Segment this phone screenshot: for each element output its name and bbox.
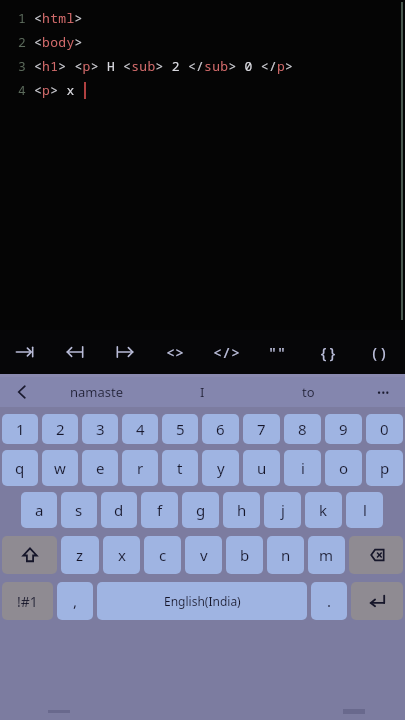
button[interactable]: 3 (82, 414, 118, 444)
staticText: English(India) (164, 593, 241, 609)
button[interactable]: Previous suggestions (0, 377, 44, 407)
button[interactable]: Insert </> (201, 330, 252, 374)
button[interactable]: t (162, 450, 198, 486)
staticText: 4 (136, 419, 145, 439)
staticText: o (339, 458, 349, 478)
staticText: w (54, 458, 66, 478)
staticText: d (114, 500, 124, 520)
button[interactable]: u (243, 450, 280, 486)
button[interactable]: y (202, 450, 239, 486)
staticText: g (196, 500, 206, 520)
staticText: I (200, 383, 205, 401)
staticText: 3 (96, 419, 105, 439)
button[interactable]: j (264, 492, 301, 528)
button[interactable]: I (149, 377, 255, 407)
staticText: , (73, 591, 78, 611)
staticText: q (15, 458, 25, 478)
button[interactable]: Insert "" (252, 330, 303, 374)
staticText: h (237, 500, 247, 520)
button[interactable]: v (185, 536, 222, 574)
button[interactable]: 9 (325, 414, 362, 444)
staticText: f (157, 500, 163, 520)
staticText: <body> (34, 33, 83, 51)
staticText: <> (166, 342, 185, 362)
staticText: 2 (18, 33, 26, 51)
button[interactable]: w (42, 450, 78, 486)
button[interactable]: Insert tab (0, 330, 50, 374)
button[interactable]: English(India) (97, 582, 307, 620)
button[interactable]: !#1 (2, 582, 53, 620)
button[interactable]: Insert {} (303, 330, 354, 374)
staticText: 4 (18, 81, 26, 99)
button[interactable]: o (325, 450, 362, 486)
staticText: y (217, 458, 225, 478)
button[interactable]: More options (361, 377, 405, 407)
button[interactable]: b (226, 536, 263, 574)
button[interactable]: i (284, 450, 321, 486)
button[interactable]: 4 (122, 414, 158, 444)
button[interactable]: Insert () (354, 330, 405, 374)
staticText: <html> (34, 9, 83, 27)
button[interactable]: 5 (162, 414, 198, 444)
staticText: 8 (298, 419, 307, 439)
button[interactable]: m (308, 536, 345, 574)
button[interactable]: k (305, 492, 342, 528)
button[interactable]: 7 (243, 414, 280, 444)
button[interactable]: r (122, 450, 158, 486)
staticText: r (137, 458, 144, 478)
button[interactable]: a (21, 492, 57, 528)
staticText: <h1> <p> H <sub> 2 </sub> 0 </p> (34, 57, 294, 75)
staticText: 3 (18, 57, 26, 75)
staticText: a (35, 500, 44, 520)
button[interactable]: n (267, 536, 304, 574)
staticText: ••• (377, 385, 390, 400)
button[interactable]: h (223, 492, 260, 528)
button[interactable]: 0 (366, 414, 403, 444)
staticText: j (281, 500, 285, 520)
button[interactable]: , (57, 582, 93, 620)
button[interactable]: f (141, 492, 178, 528)
button[interactable]: Key (351, 582, 403, 620)
button[interactable]: Insert <> (150, 330, 201, 374)
button[interactable]: c (144, 536, 181, 574)
button[interactable]: 1 (2, 414, 38, 444)
button[interactable]: namaste (44, 377, 149, 407)
button[interactable]: 2 (42, 414, 78, 444)
button[interactable]: g (182, 492, 219, 528)
staticText: <p> x (34, 81, 83, 99)
staticText: 0 (380, 419, 389, 439)
staticText: z (76, 545, 84, 565)
staticText: i (301, 458, 305, 478)
staticText: . (327, 591, 332, 611)
button[interactable]: p (366, 450, 403, 486)
button[interactable]: Insert larr (50, 330, 100, 374)
button[interactable]: e (82, 450, 118, 486)
button[interactable]: Insert rarr (100, 330, 150, 374)
staticText: </> (213, 342, 241, 362)
button[interactable]: 6 (202, 414, 239, 444)
staticText: namaste (70, 383, 124, 401)
staticText: 6 (216, 419, 225, 439)
staticText: t (177, 458, 183, 478)
staticText: 1 (16, 419, 25, 439)
staticText: {} (319, 342, 338, 362)
button[interactable]: . (311, 582, 347, 620)
button[interactable]: l (346, 492, 383, 528)
staticText: 2 (56, 419, 65, 439)
staticText: s (75, 500, 83, 520)
staticText: 7 (257, 419, 266, 439)
button[interactable]: Key (2, 536, 57, 574)
button[interactable]: q (2, 450, 38, 486)
button[interactable]: z (61, 536, 99, 574)
button[interactable]: 8 (284, 414, 321, 444)
button[interactable]: Key (349, 536, 403, 574)
button[interactable]: to (255, 377, 361, 407)
button[interactable]: s (61, 492, 97, 528)
button[interactable]: d (101, 492, 137, 528)
staticText: 5 (176, 419, 185, 439)
staticText: b (240, 545, 250, 565)
staticText: k (319, 500, 328, 520)
staticText: to (302, 383, 315, 401)
staticText: p (380, 458, 390, 478)
button[interactable]: x (103, 536, 140, 574)
